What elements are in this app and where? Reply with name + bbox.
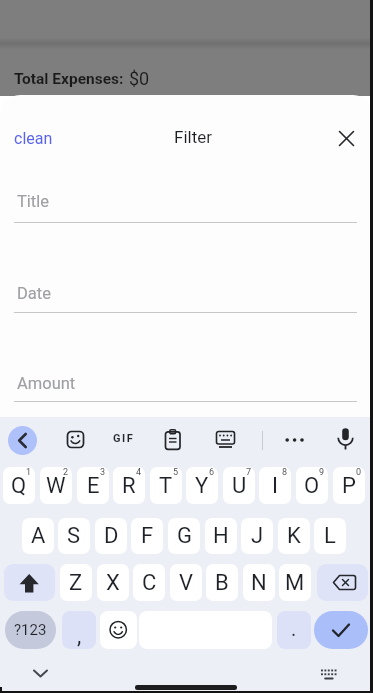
button[interactable]: T — [150, 467, 182, 504]
button[interactable]: S — [58, 518, 90, 554]
staticText: R — [122, 473, 136, 499]
button[interactable]: F — [131, 518, 163, 554]
staticText: D — [104, 523, 119, 549]
staticText: Title — [17, 192, 50, 211]
staticText: 3 — [100, 467, 106, 478]
button[interactable]: G — [168, 518, 200, 554]
button[interactable] — [314, 611, 368, 649]
button[interactable] — [14, 180, 357, 222]
staticText: 7 — [246, 467, 252, 478]
staticText: Amount — [17, 374, 76, 393]
staticText: A — [31, 523, 46, 549]
staticText: $0 — [129, 68, 150, 89]
staticText: O — [304, 473, 320, 499]
staticText: V — [179, 570, 194, 596]
staticText: , — [77, 623, 82, 649]
button[interactable] — [135, 685, 237, 690]
staticText: X — [106, 570, 120, 596]
button[interactable]: Z — [60, 564, 92, 601]
button[interactable]: Q — [3, 467, 35, 504]
button[interactable]: A — [22, 518, 54, 554]
button[interactable] — [163, 429, 183, 451]
staticText: Date — [17, 284, 51, 303]
staticText: E — [87, 473, 100, 499]
button[interactable] — [317, 564, 368, 601]
button[interactable]: ?123 — [5, 611, 56, 649]
staticText: 9 — [319, 467, 325, 478]
button[interactable]: L — [314, 518, 346, 554]
staticText: 6 — [209, 467, 215, 478]
button[interactable] — [100, 611, 137, 649]
staticText: I — [272, 473, 278, 499]
button[interactable]: U — [223, 467, 255, 504]
button[interactable] — [4, 564, 55, 601]
staticText: J — [251, 523, 264, 549]
staticText: Filter — [174, 127, 213, 147]
staticText: Y — [195, 473, 209, 499]
staticText: clean — [14, 129, 53, 148]
button[interactable]: W — [40, 467, 72, 504]
staticText: B — [215, 570, 229, 596]
button[interactable]: N — [243, 564, 275, 601]
button[interactable]: E — [77, 467, 109, 504]
button[interactable] — [8, 426, 37, 455]
staticText: F — [141, 523, 154, 549]
button[interactable]: M — [279, 564, 311, 601]
staticText: L — [324, 523, 336, 549]
staticText: . — [291, 617, 297, 640]
button[interactable] — [318, 666, 340, 688]
button[interactable]: P — [333, 467, 365, 504]
button[interactable] — [66, 430, 86, 450]
button[interactable]: Y — [186, 467, 218, 504]
staticText: 4 — [136, 467, 142, 478]
button[interactable]: GIF — [113, 432, 135, 445]
staticText: W — [46, 473, 66, 499]
button[interactable] — [28, 662, 53, 687]
staticText: 8 — [282, 467, 288, 478]
staticText: Q — [11, 473, 27, 499]
staticText: M — [285, 570, 305, 596]
staticText: 5 — [173, 467, 179, 478]
button[interactable]: H — [205, 518, 237, 554]
button[interactable]: B — [206, 564, 238, 601]
button[interactable] — [215, 430, 236, 449]
button[interactable]: , — [62, 611, 96, 649]
staticText: K — [287, 523, 301, 549]
staticText: H — [213, 523, 229, 549]
button[interactable]: K — [278, 518, 310, 554]
button[interactable] — [14, 360, 357, 402]
staticText: Total Expenses: — [14, 70, 124, 88]
button[interactable]: C — [133, 564, 165, 601]
staticText: C — [142, 570, 157, 596]
button[interactable]: O — [296, 467, 328, 504]
button[interactable] — [336, 427, 355, 453]
staticText: G — [177, 523, 192, 549]
staticText: 1 — [26, 467, 32, 478]
staticText: S — [67, 523, 81, 549]
staticText: 2 — [63, 467, 69, 478]
button[interactable]: . — [277, 611, 311, 649]
button[interactable]: I — [259, 467, 291, 504]
staticText: ?123 — [14, 621, 47, 639]
staticText: U — [232, 473, 247, 499]
staticText: 0 — [356, 467, 362, 478]
staticText: P — [342, 473, 356, 499]
staticText: GIF — [113, 432, 135, 445]
button[interactable]: J — [241, 518, 273, 554]
button[interactable] — [334, 126, 358, 150]
staticText: T — [159, 473, 173, 499]
button[interactable]: D — [95, 518, 127, 554]
button[interactable] — [284, 430, 306, 450]
button[interactable]: R — [113, 467, 145, 504]
button[interactable]: X — [97, 564, 129, 601]
button[interactable]: clean — [10, 124, 49, 143]
button[interactable] — [14, 272, 357, 314]
staticText: Z — [69, 570, 83, 596]
staticText: N — [251, 570, 267, 596]
button[interactable]: V — [170, 564, 202, 601]
